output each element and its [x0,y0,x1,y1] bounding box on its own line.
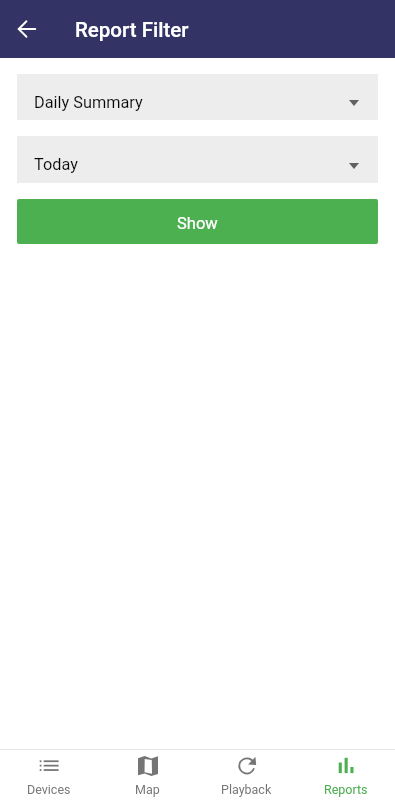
button[interactable]: Today [17,136,378,183]
staticText: Daily Summary [34,93,143,112]
staticText: Playback [221,782,272,797]
staticText: Map [135,782,160,797]
button[interactable]: Daily Summary [17,74,378,120]
staticText: Reports [324,782,368,797]
staticText: Report Filter [75,18,189,42]
staticText: Show [177,214,218,233]
button[interactable]: Show [17,199,378,244]
staticText: Today [34,155,78,174]
staticText: Devices [27,782,71,797]
button[interactable]: Devices [0,749,98,800]
button[interactable]: Map [98,749,197,800]
button[interactable]: Playback [197,749,296,800]
button[interactable]: Reports [296,749,395,800]
button[interactable]: Navigate up [3,5,51,53]
